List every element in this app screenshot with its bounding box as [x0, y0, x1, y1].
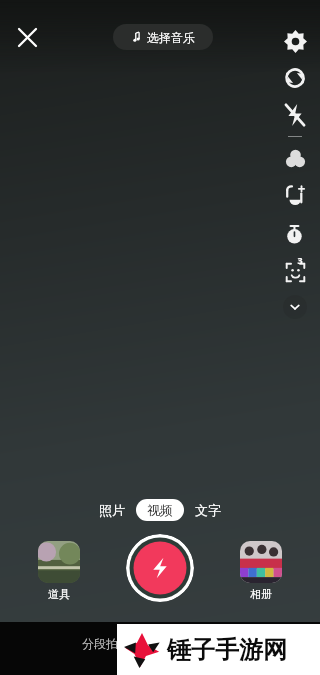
button[interactable]: Settings	[275, 22, 315, 60]
button[interactable]: 相册	[240, 541, 282, 601]
button[interactable]: Beauty	[275, 139, 315, 177]
staticText: 道具	[48, 587, 70, 601]
button[interactable]: 道具	[38, 541, 80, 601]
button[interactable]: Record	[126, 534, 194, 602]
button[interactable]: Face effects	[275, 253, 315, 291]
button[interactable]: Flip camera	[275, 60, 315, 96]
staticText: 3	[297, 254, 303, 266]
button[interactable]: 照片	[90, 500, 134, 520]
button[interactable]: Timer	[275, 215, 315, 253]
staticText: 锤子手游网	[167, 635, 287, 665]
staticText: 视频	[147, 502, 173, 518]
button[interactable]: Flash off	[275, 96, 315, 134]
staticText: 分段拍	[82, 636, 118, 651]
button[interactable]: More options	[283, 295, 307, 319]
button[interactable]: Filters	[275, 177, 315, 215]
staticText: 相册	[250, 587, 272, 601]
button[interactable]: 选择音乐	[113, 24, 213, 50]
button[interactable]: 视频	[136, 499, 184, 521]
button[interactable]: 文字	[186, 500, 230, 520]
button[interactable]: 分段拍	[78, 634, 122, 653]
staticText: 照片	[99, 502, 125, 518]
button[interactable]: Close	[6, 16, 48, 58]
staticText: 文字	[195, 502, 221, 518]
staticText: 选择音乐	[147, 30, 195, 45]
